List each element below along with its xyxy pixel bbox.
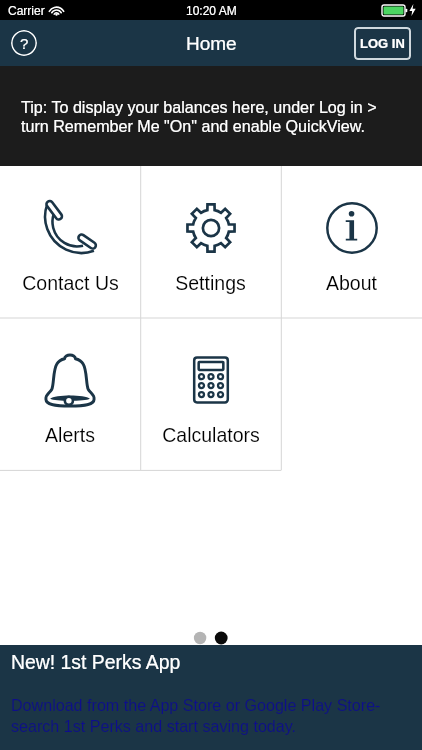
button[interactable]: Calculators <box>140 318 281 471</box>
staticText: Contact Us <box>22 272 119 294</box>
staticText: Carrier <box>8 4 45 17</box>
button[interactable]: Help <box>11 30 37 56</box>
button[interactable]: Contact Us <box>0 166 140 318</box>
staticText: Tip: To display your balances here, unde… <box>21 98 377 135</box>
staticText: Settings <box>175 272 246 294</box>
staticText: Home <box>186 33 237 54</box>
button[interactable]: Alerts <box>0 318 140 471</box>
staticText: LOG IN <box>360 36 405 51</box>
button[interactable]: Download from the App Store or Google Pl… <box>11 696 381 736</box>
staticText: ? <box>20 35 29 52</box>
button[interactable]: Settings <box>140 166 281 318</box>
button[interactable]: About <box>281 166 422 318</box>
staticText: Calculators <box>162 424 260 446</box>
button[interactable]: LOG IN <box>354 27 411 60</box>
staticText: New! 1st Perks App <box>11 651 181 673</box>
staticText: Alerts <box>45 424 95 446</box>
staticText: 10:20 AM <box>186 4 237 17</box>
staticText: About <box>326 272 377 294</box>
